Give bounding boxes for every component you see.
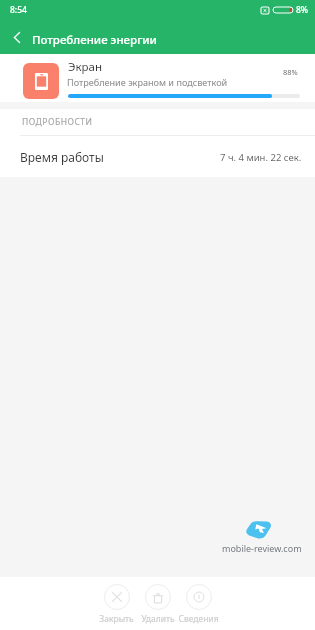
button[interactable]: Back <box>3 23 31 51</box>
staticText: 88% <box>283 67 298 77</box>
staticText: Закрыть <box>99 613 134 625</box>
staticText: 8% <box>296 4 309 16</box>
staticText: Сведения <box>178 613 219 625</box>
staticText: Потребление экраном и подсветкой <box>67 76 228 88</box>
staticText: Время работы <box>20 149 104 165</box>
staticText: 7 ч. 4 мин. 22 сек. <box>220 151 302 164</box>
button[interactable]: Сведения <box>178 584 219 625</box>
button[interactable]: Время работы <box>0 136 315 177</box>
staticText: Экран <box>68 59 102 75</box>
button[interactable]: Удалить <box>137 584 178 625</box>
staticText: 8:54 <box>10 4 27 16</box>
staticText: ПОДРОБНОСТИ <box>22 116 93 128</box>
staticText: Удалить <box>141 613 175 625</box>
staticText: Потребление энергии <box>32 32 157 48</box>
button[interactable]: Закрыть <box>96 584 137 625</box>
staticText: mobile-review.com <box>222 542 302 554</box>
